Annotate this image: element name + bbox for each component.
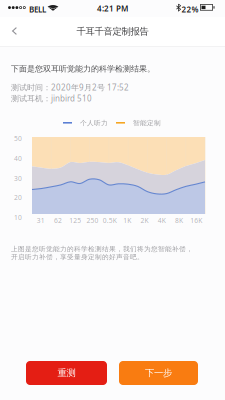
staticText: 测试耳机：jinbird 510 <box>11 93 92 104</box>
button[interactable]: 重测 <box>26 361 107 385</box>
staticText: 4K <box>158 216 166 225</box>
staticText: BELL <box>29 4 46 15</box>
staticText: 8K <box>175 216 183 225</box>
staticText: 千耳千音定制报告 <box>76 26 148 37</box>
staticText: 下一步 <box>145 367 172 379</box>
staticText: 62 <box>54 216 62 225</box>
staticText: 22% <box>181 4 198 15</box>
staticText: 上图是您听觉能力的科学检测结果，我们将为您智能补偿， <box>11 245 193 253</box>
staticText: 50 <box>14 134 22 143</box>
staticText: 31 <box>37 216 45 225</box>
staticText: 250 <box>86 216 98 225</box>
button[interactable]: 下一步 <box>119 361 198 385</box>
staticText: 125 <box>69 216 81 225</box>
staticText: 智能定制 <box>133 119 161 127</box>
staticText: 1K <box>123 216 131 225</box>
staticText: 个人听力 <box>80 119 108 127</box>
staticText: 0.5K <box>103 216 117 225</box>
staticText: 40 <box>14 154 22 163</box>
staticText: 10 <box>14 213 22 222</box>
staticText: 开启听力补偿，享受量身定制的好声音吧。 <box>11 253 144 261</box>
staticText: 20 <box>14 193 22 202</box>
staticText: 下面是您双耳听觉能力的科学检测结果。 <box>11 64 155 74</box>
staticText: 测试时间：2020年9月2号 17:52 <box>11 82 129 93</box>
staticText: 16K <box>190 216 202 225</box>
staticText: 2K <box>140 216 148 225</box>
staticText: 4:21 PM <box>97 3 128 14</box>
button[interactable]: Back <box>1 18 27 44</box>
staticText: 30 <box>14 174 22 183</box>
staticText: 重测 <box>57 367 75 379</box>
